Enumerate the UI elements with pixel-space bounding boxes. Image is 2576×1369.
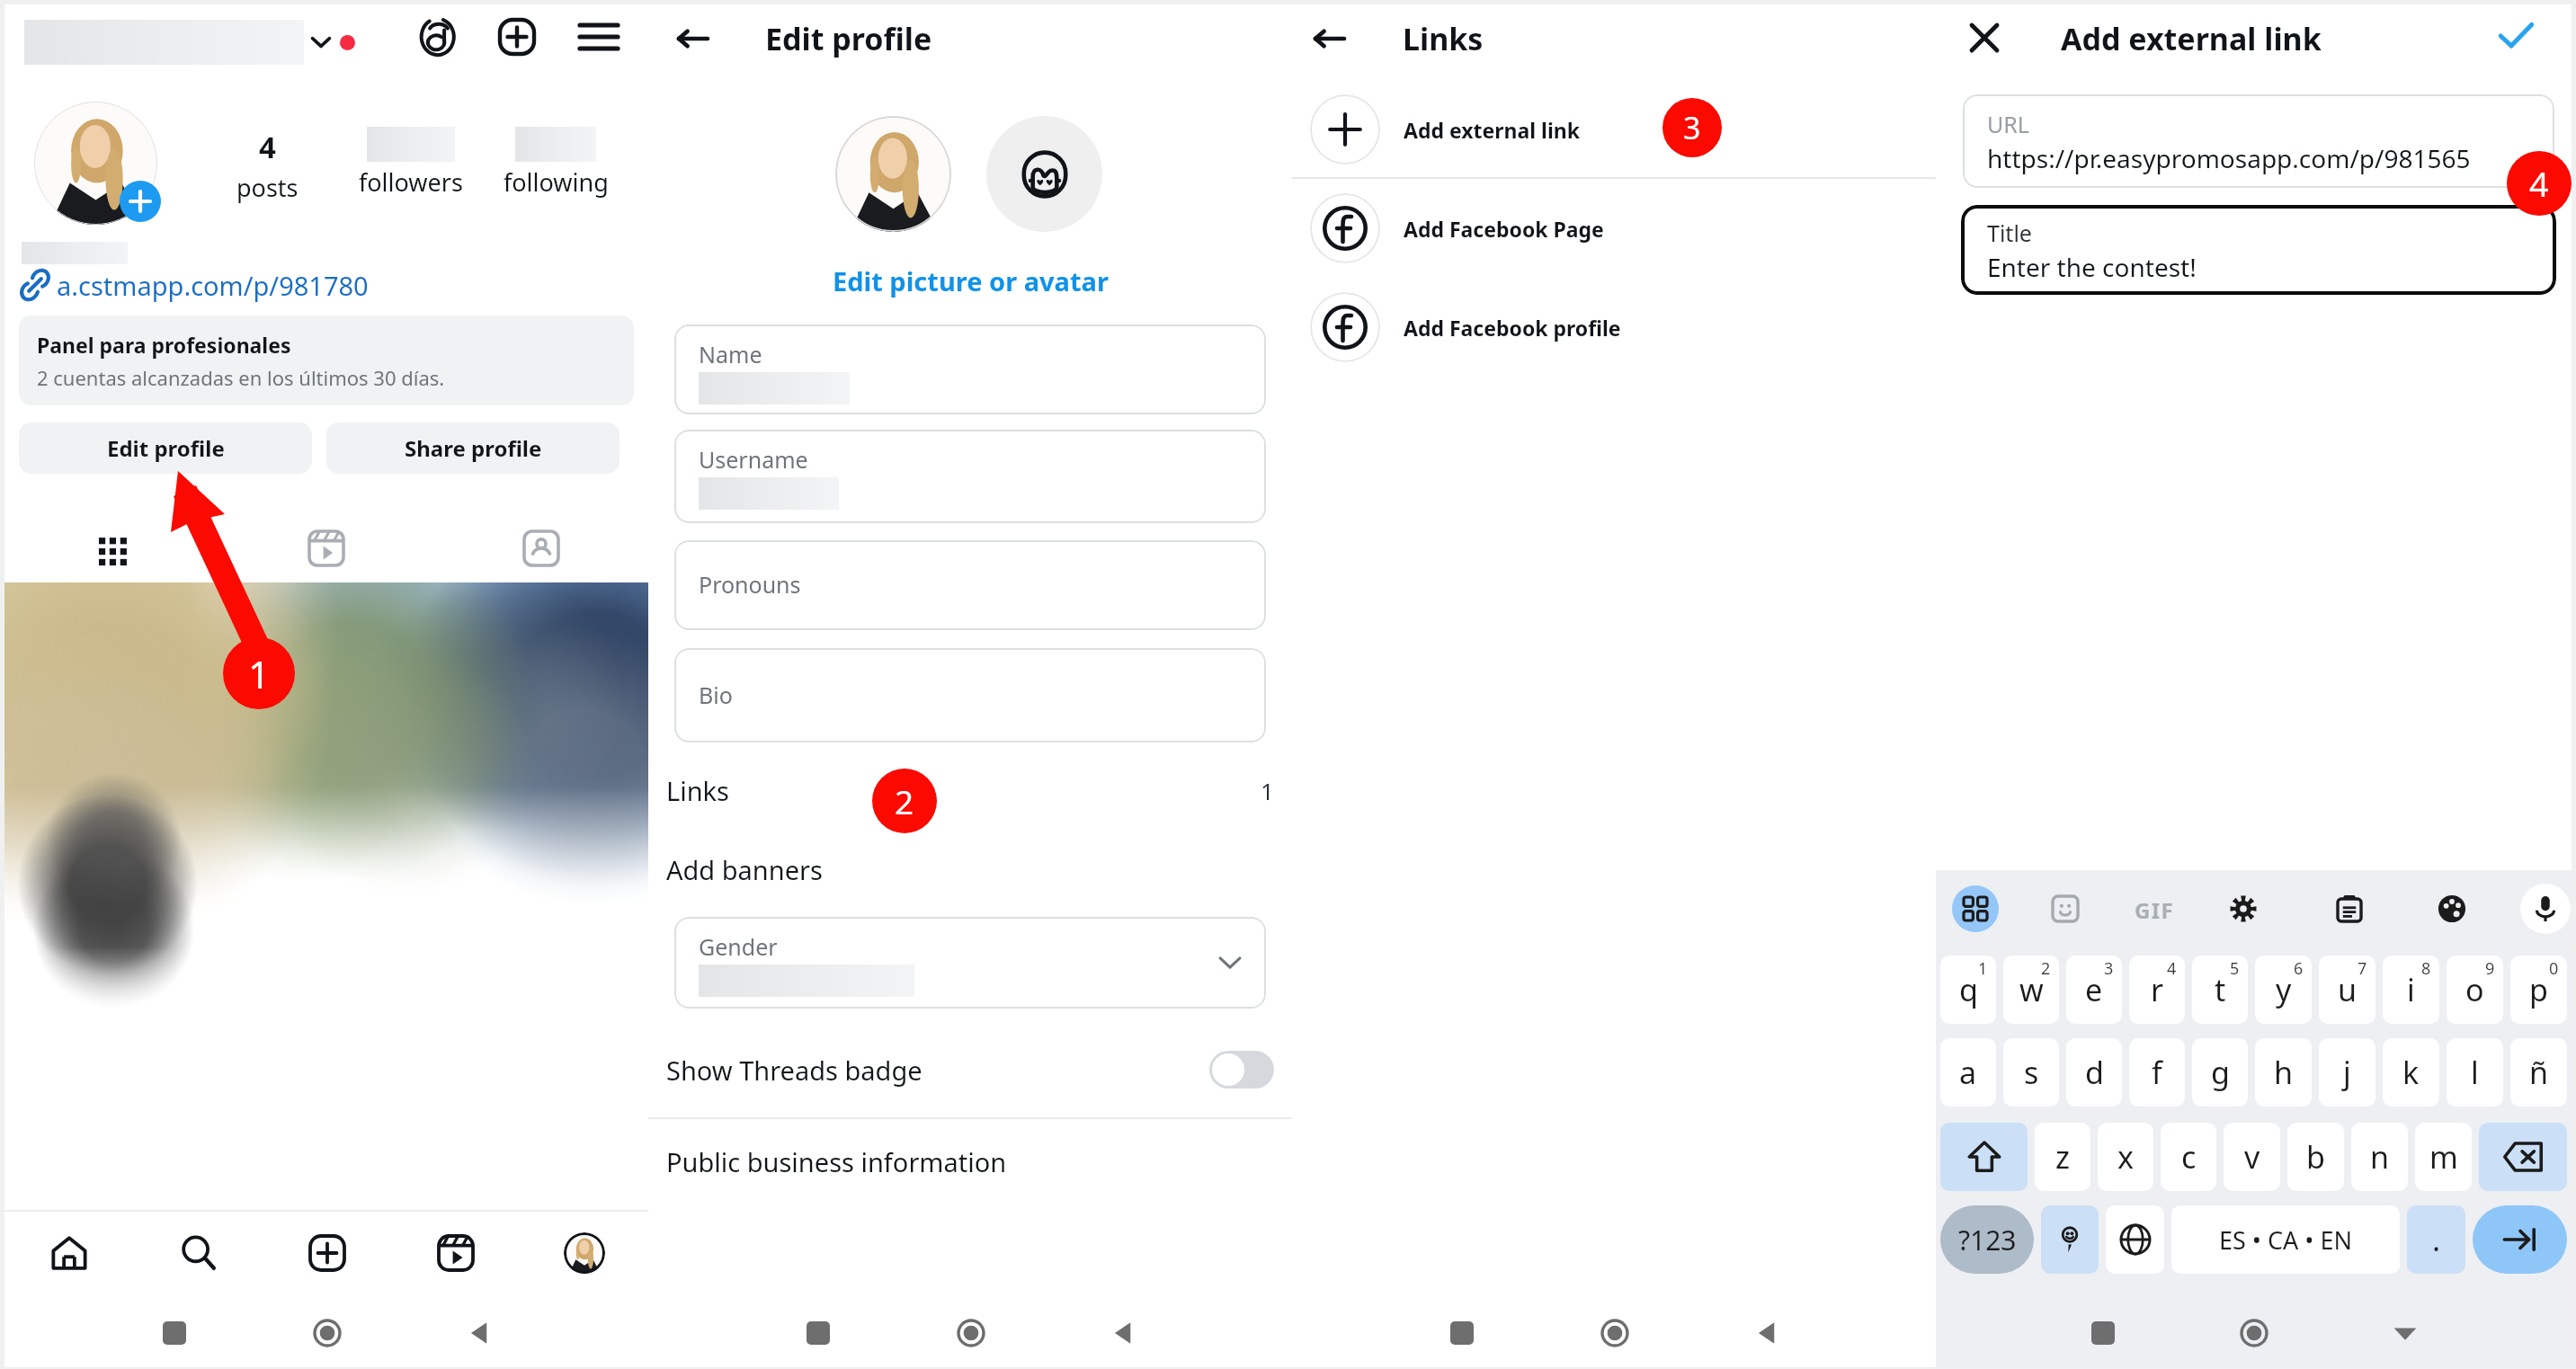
button[interactable]: f — [2129, 1038, 2185, 1107]
staticText: 2 — [2041, 957, 2051, 980]
button[interactable]: g — [2192, 1038, 2248, 1107]
button[interactable]: Back — [668, 13, 718, 64]
button[interactable]: Voice input — [2520, 884, 2571, 934]
button[interactable]: Home — [2179, 1299, 2330, 1367]
button[interactable]: Threads — [413, 11, 465, 63]
button[interactable]: Home — [251, 1299, 404, 1367]
staticText: c — [2181, 1136, 2197, 1178]
button[interactable]: Menu — [573, 11, 625, 63]
staticText: Name — [699, 339, 762, 369]
button[interactable]: Recent apps — [741, 1299, 895, 1367]
button[interactable]: . — [2407, 1205, 2465, 1274]
button[interactable]: Create — [491, 11, 543, 63]
button[interactable]: Pronouns — [674, 540, 1266, 630]
button[interactable]: b — [2287, 1123, 2344, 1191]
button[interactable]: GIF — [2129, 890, 2180, 930]
button[interactable]: Profile — [520, 1212, 648, 1294]
button[interactable]: m — [2415, 1123, 2472, 1191]
button[interactable]: Back — [1305, 13, 1355, 64]
button[interactable]: Home — [1538, 1299, 1691, 1367]
button[interactable]: Tagged — [433, 519, 648, 578]
button[interactable]: c — [2161, 1123, 2216, 1191]
button[interactable]: k — [2383, 1038, 2439, 1107]
button[interactable]: p — [2510, 956, 2567, 1024]
button[interactable]: ?123 — [1940, 1205, 2034, 1274]
button[interactable]: URL — [1963, 94, 2554, 188]
button[interactable]: a.cstmapp.com/p/981780 — [17, 267, 369, 303]
button[interactable]: Gender — [674, 917, 1266, 1009]
button[interactable] — [1940, 1123, 2028, 1191]
staticText: Links — [666, 773, 729, 808]
button[interactable] — [2479, 1123, 2567, 1191]
button[interactable]: Reels — [218, 519, 433, 578]
button[interactable]: Show Threads badge — [666, 1047, 1274, 1092]
button[interactable]: h — [2255, 1038, 2312, 1107]
button[interactable]: Recent apps — [97, 1299, 251, 1367]
button[interactable]: l — [2447, 1038, 2503, 1107]
button[interactable]: Search — [134, 1212, 263, 1294]
button[interactable]: Recent apps — [2028, 1299, 2179, 1367]
button[interactable]: n — [2351, 1123, 2408, 1191]
button[interactable]: Name — [674, 324, 1266, 414]
button[interactable]: Close — [1959, 13, 2010, 63]
button[interactable]: Add Facebook Page — [1292, 179, 1936, 278]
button[interactable]: Home — [895, 1299, 1047, 1367]
button[interactable]: Switch account — [308, 29, 334, 56]
button[interactable]: Add banners — [666, 848, 1274, 891]
button[interactable]: Public business information — [666, 1140, 1274, 1183]
button[interactable] — [2041, 1205, 2099, 1274]
button[interactable]: Keyboard settings — [2220, 885, 2267, 932]
button[interactable]: Profile picture — [34, 102, 157, 225]
button[interactable]: Recent apps — [1385, 1299, 1538, 1367]
button[interactable]: Reels — [391, 1212, 520, 1294]
button[interactable]: Share profile — [326, 422, 619, 474]
button[interactable]: Add Facebook profile — [1292, 278, 1936, 377]
button[interactable]: Back — [404, 1299, 557, 1367]
button[interactable]: Clipboard — [2326, 885, 2373, 932]
button[interactable]: q — [1940, 956, 1996, 1024]
button[interactable]: j — [2319, 1038, 2375, 1107]
button[interactable]: Posts grid — [4, 519, 218, 578]
button[interactable]: w — [2003, 956, 2059, 1024]
button[interactable]: Edit profile — [19, 422, 312, 474]
button[interactable] — [2106, 1205, 2164, 1274]
staticText: 2 — [895, 778, 914, 823]
button[interactable]: Keyboard apps — [1952, 885, 1999, 932]
button[interactable]: Create post — [263, 1212, 391, 1294]
button[interactable]: t — [2192, 956, 2248, 1024]
staticText: b — [2306, 1136, 2325, 1178]
button[interactable]: ES • CA • EN — [2171, 1205, 2400, 1274]
button[interactable]: s — [2003, 1038, 2059, 1107]
button[interactable]: Edit picture or avatar — [827, 258, 1114, 304]
button[interactable]: Links — [666, 769, 1274, 812]
button[interactable]: Theme — [2429, 885, 2475, 932]
button[interactable]: a — [1940, 1038, 1996, 1107]
button[interactable]: Back — [1047, 1299, 1200, 1367]
button[interactable]: r — [2129, 956, 2185, 1024]
button[interactable]: u — [2319, 956, 2375, 1024]
button[interactable]: v — [2224, 1123, 2280, 1191]
button[interactable]: Profile picture — [835, 116, 951, 232]
button[interactable]: e — [2066, 956, 2122, 1024]
button[interactable]: Add external link — [1292, 80, 1936, 179]
button[interactable]: Add to story — [120, 181, 161, 222]
button[interactable]: o — [2447, 956, 2503, 1024]
button[interactable]: Title — [1961, 205, 2556, 295]
button[interactable]: Back — [1691, 1299, 1844, 1367]
staticText: Public business information — [666, 1144, 1007, 1179]
button[interactable]: Home — [4, 1212, 134, 1294]
button[interactable]: Hide keyboard — [2330, 1299, 2481, 1367]
button[interactable]: Stickers — [2042, 885, 2089, 932]
button[interactable]: Bio — [674, 648, 1266, 742]
button[interactable]: Save — [2491, 11, 2541, 61]
button[interactable]: i — [2383, 956, 2439, 1024]
button[interactable]: y — [2255, 956, 2312, 1024]
button[interactable] — [2473, 1205, 2567, 1274]
button[interactable]: Username — [674, 430, 1266, 523]
button[interactable]: Avatar — [986, 116, 1102, 232]
button[interactable]: x — [2098, 1123, 2153, 1191]
button[interactable]: z — [2035, 1123, 2090, 1191]
button[interactable]: ñ — [2510, 1038, 2567, 1107]
button[interactable]: d — [2066, 1038, 2122, 1107]
button[interactable]: Panel para profesionales — [19, 316, 634, 405]
